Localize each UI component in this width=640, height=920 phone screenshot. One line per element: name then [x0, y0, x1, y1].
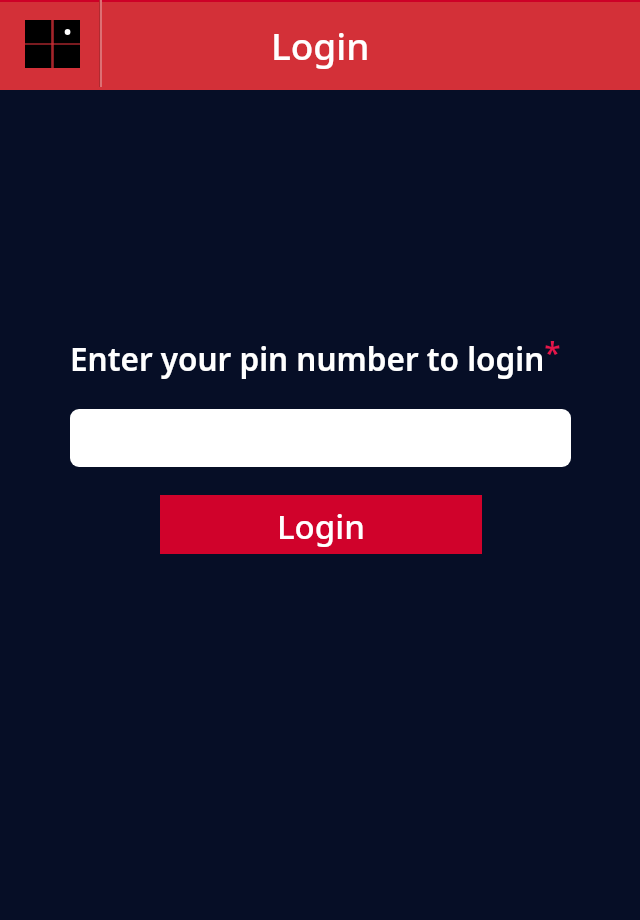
button[interactable]: Pin number input field [70, 409, 571, 467]
staticText: Enter your pin number to login* [70, 332, 561, 380]
button[interactable]: App logo [25, 20, 80, 68]
staticText: Login [271, 20, 370, 70]
staticText: Login [277, 504, 365, 549]
button[interactable]: Login [160, 495, 482, 554]
